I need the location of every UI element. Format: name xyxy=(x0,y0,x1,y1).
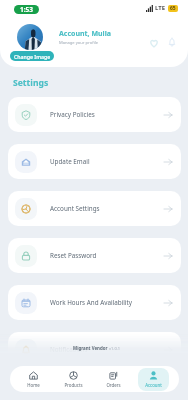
staticText: Home xyxy=(27,382,40,388)
button[interactable]: Change Image xyxy=(10,51,54,61)
staticText: Settings xyxy=(13,77,49,89)
staticText: Orders xyxy=(106,382,121,388)
staticText: 65 xyxy=(170,5,176,12)
button[interactable]: Notifications xyxy=(164,34,180,50)
button[interactable]: Reset Password xyxy=(8,238,181,273)
staticText: Account Settings xyxy=(50,204,100,213)
staticText: Update Email xyxy=(50,157,90,166)
button[interactable]: Products xyxy=(57,368,90,391)
staticText: Migrant Vendor xyxy=(73,345,109,351)
staticText: Reset Password xyxy=(50,251,97,260)
staticText: LTE xyxy=(155,4,166,12)
button[interactable]: Update Email xyxy=(8,144,181,179)
staticText: v1.0.1 xyxy=(109,346,121,351)
button[interactable]: Notifications xyxy=(8,332,181,367)
button[interactable]: Work Hours And Availability xyxy=(8,285,181,320)
button[interactable]: Privacy Policies xyxy=(8,97,181,132)
staticText: 1:53 xyxy=(20,5,33,14)
staticText: Privacy Policies xyxy=(50,110,95,119)
staticText: Change Image xyxy=(14,53,51,60)
staticText: Account xyxy=(145,382,162,388)
staticText: Products xyxy=(64,382,83,388)
staticText: Notifications xyxy=(50,345,88,354)
staticText: Account, Mulla xyxy=(59,29,111,39)
staticText: Work Hours And Availability xyxy=(50,298,132,307)
button[interactable]: Orders xyxy=(99,368,128,391)
button[interactable]: Account xyxy=(138,368,169,391)
staticText: Manage your profile xyxy=(59,40,99,46)
button[interactable]: Favorites xyxy=(146,35,162,51)
button[interactable]: Account Settings xyxy=(8,191,181,226)
button[interactable]: Home xyxy=(20,368,47,391)
